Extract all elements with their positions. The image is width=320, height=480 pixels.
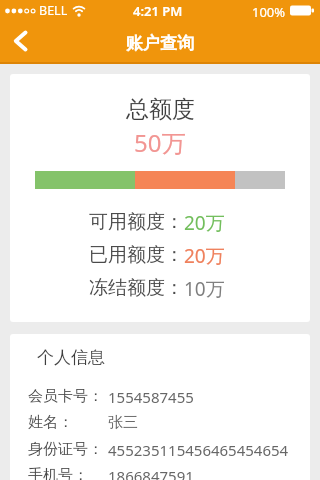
staticText: 已用额度：: [89, 243, 184, 267]
button[interactable]: [4, 22, 40, 62]
staticText: 4:21 PM: [133, 2, 183, 20]
staticText: 手机号：: [28, 466, 88, 480]
staticText: 20万: [184, 210, 225, 236]
staticText: 1866847591: [108, 466, 194, 480]
staticText: 20万: [184, 243, 225, 269]
staticText: 1554587455: [108, 387, 194, 407]
staticText: 冻结额度：: [89, 276, 184, 300]
staticText: 100%: [252, 3, 286, 21]
staticText: 455235115456465454654: [108, 440, 289, 460]
staticText: 姓名：: [28, 413, 73, 432]
staticText: 身份证号：: [28, 440, 103, 459]
staticText: 个人信息: [37, 347, 105, 368]
staticText: 账户查询: [126, 33, 194, 54]
staticText: BELL: [39, 2, 68, 19]
staticText: 可用额度：: [89, 210, 184, 234]
staticText: 总额度: [126, 95, 195, 124]
staticText: 50万: [134, 126, 186, 159]
staticText: 张三: [108, 413, 138, 432]
staticText: 会员卡号：: [28, 387, 103, 406]
staticText: 10万: [184, 276, 225, 302]
